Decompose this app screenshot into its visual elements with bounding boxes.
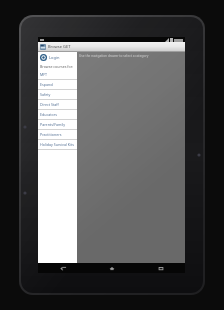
button[interactable]: Holiday Survival Kits bbox=[38, 140, 77, 149]
button[interactable]: MFT bbox=[38, 70, 77, 79]
staticText: Browse courses for: bbox=[40, 64, 74, 69]
button[interactable]: Login bbox=[38, 52, 77, 63]
staticText: Practitioners bbox=[40, 132, 62, 137]
button[interactable]: Parents/Family Members bbox=[38, 120, 77, 129]
button[interactable]: Recent apps bbox=[136, 263, 185, 273]
button[interactable]: Home bbox=[87, 263, 136, 273]
staticText: Espanol bbox=[40, 82, 54, 87]
staticText: Browse GET bbox=[48, 44, 71, 49]
button[interactable]: Espanol bbox=[38, 80, 77, 89]
button[interactable]: Practitioners bbox=[38, 130, 77, 139]
staticText: Parents/Family Members bbox=[40, 122, 76, 127]
button[interactable]: Educators bbox=[38, 110, 77, 119]
button[interactable]: Back bbox=[38, 263, 87, 273]
staticText: Holiday Survival Kits bbox=[40, 142, 74, 147]
staticText: Direct Staff bbox=[40, 102, 59, 107]
button[interactable]: Browse GET bbox=[38, 42, 185, 51]
staticText: Safety bbox=[40, 92, 51, 97]
button[interactable]: Direct Staff bbox=[38, 100, 77, 109]
staticText: MFT bbox=[40, 72, 48, 77]
staticText: Educators bbox=[40, 112, 57, 117]
button[interactable]: Safety bbox=[38, 90, 77, 99]
staticText: Use the navigation drawer to select a ca… bbox=[79, 54, 149, 58]
staticText: Login bbox=[49, 55, 60, 60]
